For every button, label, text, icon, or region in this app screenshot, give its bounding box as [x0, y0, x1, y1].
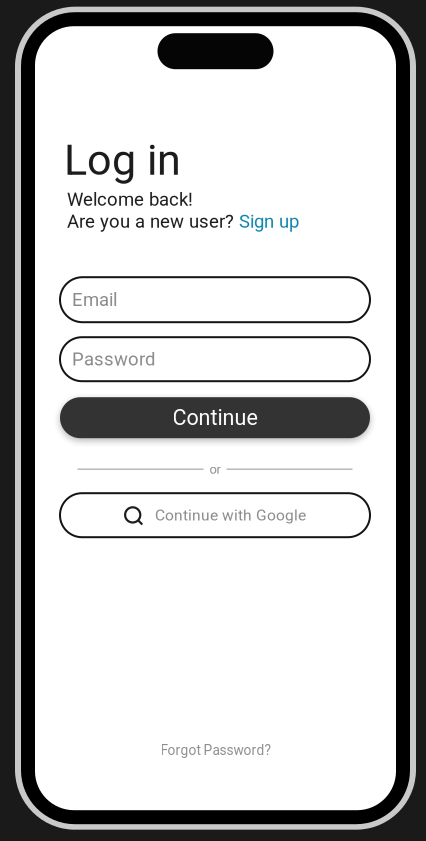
staticText: or: [209, 462, 220, 477]
button[interactable]: Continue: [60, 397, 370, 438]
staticText: Email: [72, 289, 117, 311]
staticText: Forgot Password?: [160, 742, 270, 758]
staticText: Log in: [64, 135, 181, 185]
button[interactable]: Forgot Password?: [35, 740, 396, 760]
staticText: Continue: [172, 405, 257, 430]
button[interactable]: Email: [60, 277, 370, 322]
staticText: Are you a new user?: [67, 210, 239, 232]
staticText: Welcome back!: [67, 188, 193, 210]
staticText: Continue with Google: [155, 506, 306, 524]
button[interactable]: Password: [60, 337, 370, 381]
button[interactable]: Continue with Google: [60, 493, 370, 537]
staticText: Password: [72, 348, 155, 370]
staticText: Sign up: [239, 210, 299, 232]
button[interactable]: Sign up: [239, 210, 299, 232]
